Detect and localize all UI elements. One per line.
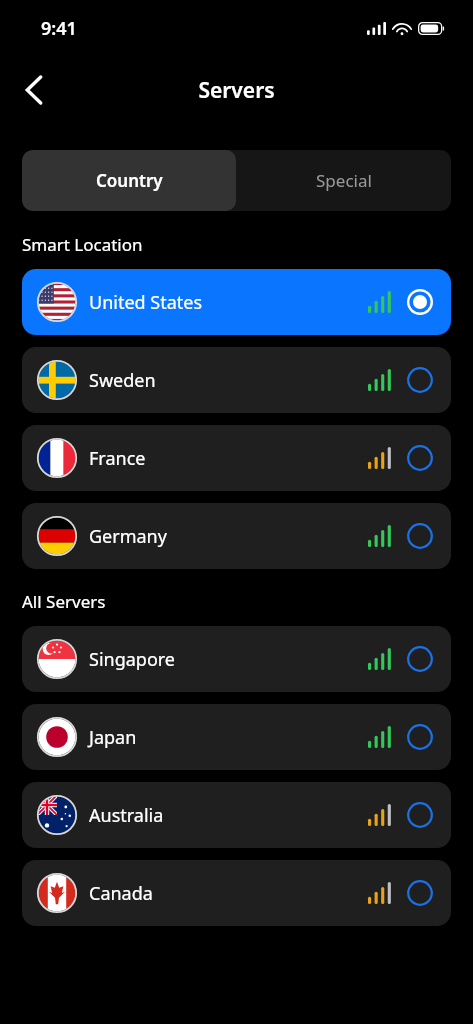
staticText: Australia bbox=[89, 803, 368, 828]
button[interactable]: Japan bbox=[22, 704, 451, 770]
button[interactable]: Singapore bbox=[22, 626, 451, 692]
button[interactable]: Country bbox=[22, 150, 236, 211]
button[interactable]: United States bbox=[22, 269, 451, 335]
staticText: Germany bbox=[89, 524, 368, 549]
button[interactable]: France bbox=[22, 425, 451, 491]
staticText: Singapore bbox=[89, 647, 368, 672]
staticText: France bbox=[89, 446, 368, 471]
button[interactable]: Special bbox=[236, 150, 451, 211]
staticText: Country bbox=[96, 169, 163, 192]
staticText: Smart Location bbox=[22, 233, 143, 256]
button[interactable]: Germany bbox=[22, 503, 451, 569]
staticText: Canada bbox=[89, 881, 368, 906]
staticText: United States bbox=[89, 290, 368, 315]
button[interactable]: Sweden bbox=[22, 347, 451, 413]
staticText: Japan bbox=[89, 725, 368, 750]
button[interactable]: Australia bbox=[22, 782, 451, 848]
staticText: Special bbox=[316, 169, 372, 192]
staticText: Servers bbox=[198, 76, 275, 105]
staticText: 9:41 bbox=[41, 16, 77, 41]
staticText: All Servers bbox=[22, 590, 106, 613]
button[interactable]: Canada bbox=[22, 860, 451, 926]
staticText: Sweden bbox=[89, 368, 368, 393]
button[interactable]: Back bbox=[10, 66, 58, 114]
